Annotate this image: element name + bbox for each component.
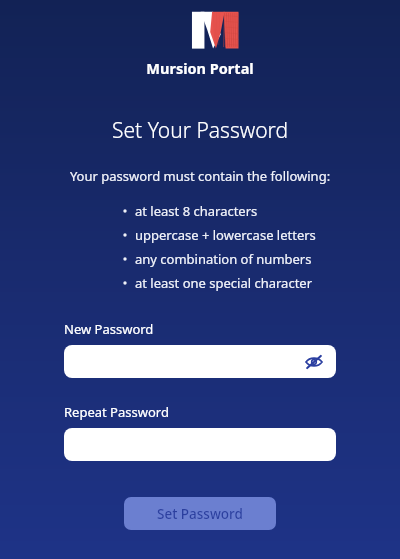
staticText: Your password must contain the following… xyxy=(0,167,400,185)
button[interactable]: Show password xyxy=(302,350,326,374)
button[interactable] xyxy=(64,428,336,461)
staticText: at least one special character xyxy=(135,274,313,292)
staticText: Mursion Portal xyxy=(0,58,400,78)
staticText: uppercase + lowercase letters xyxy=(135,226,316,244)
staticText: Set Password xyxy=(157,505,243,523)
staticText: Set Your Password xyxy=(0,116,400,145)
staticText: any combination of numbers xyxy=(135,250,312,268)
staticText: Repeat Password xyxy=(64,403,169,421)
button[interactable]: Show password xyxy=(64,345,336,378)
button[interactable]: Set Password xyxy=(124,497,276,530)
staticText: at least 8 characters xyxy=(135,202,258,220)
staticText: New Password xyxy=(64,320,154,338)
